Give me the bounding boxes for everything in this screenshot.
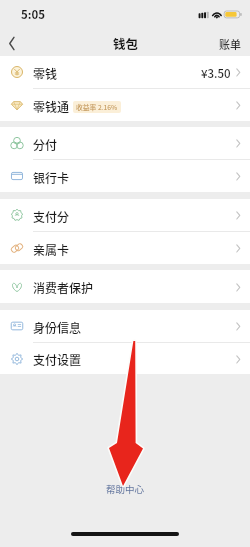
staticText: 支付设置 — [33, 351, 82, 368]
button[interactable]: 身份信息 — [0, 310, 250, 342]
staticText: 帮助中心 — [106, 482, 145, 496]
button[interactable]: 账单 — [210, 27, 250, 56]
button[interactable]: 支付设置 — [0, 343, 250, 374]
staticText: 身份信息 — [33, 319, 82, 336]
button[interactable]: 银行卡 — [0, 160, 250, 192]
staticText: 账单 — [219, 36, 241, 52]
button[interactable]: 消费者保护 — [0, 270, 250, 303]
button[interactable]: 分付 — [0, 127, 250, 159]
button[interactable]: 零钱通 — [0, 89, 250, 121]
staticText: 5:05 — [21, 6, 46, 23]
staticText: 零钱 — [33, 65, 58, 82]
staticText: 收益率 2.16% — [76, 102, 118, 112]
staticText: 支付分 — [33, 208, 70, 225]
button[interactable]: Back — [0, 26, 25, 56]
staticText: 亲属卡 — [33, 241, 70, 258]
button[interactable]: 帮助中心 — [100, 479, 151, 499]
staticText: 消费者保护 — [33, 279, 94, 296]
staticText: ¥3.50 — [201, 65, 231, 82]
button[interactable]: 零钱 — [0, 56, 250, 88]
staticText: 银行卡 — [33, 169, 70, 186]
staticText: 钱包 — [113, 34, 139, 52]
button[interactable]: 支付分 — [0, 199, 250, 231]
staticText: 分付 — [33, 136, 58, 153]
button[interactable]: 亲属卡 — [0, 232, 250, 264]
staticText: 零钱通 — [33, 98, 70, 115]
